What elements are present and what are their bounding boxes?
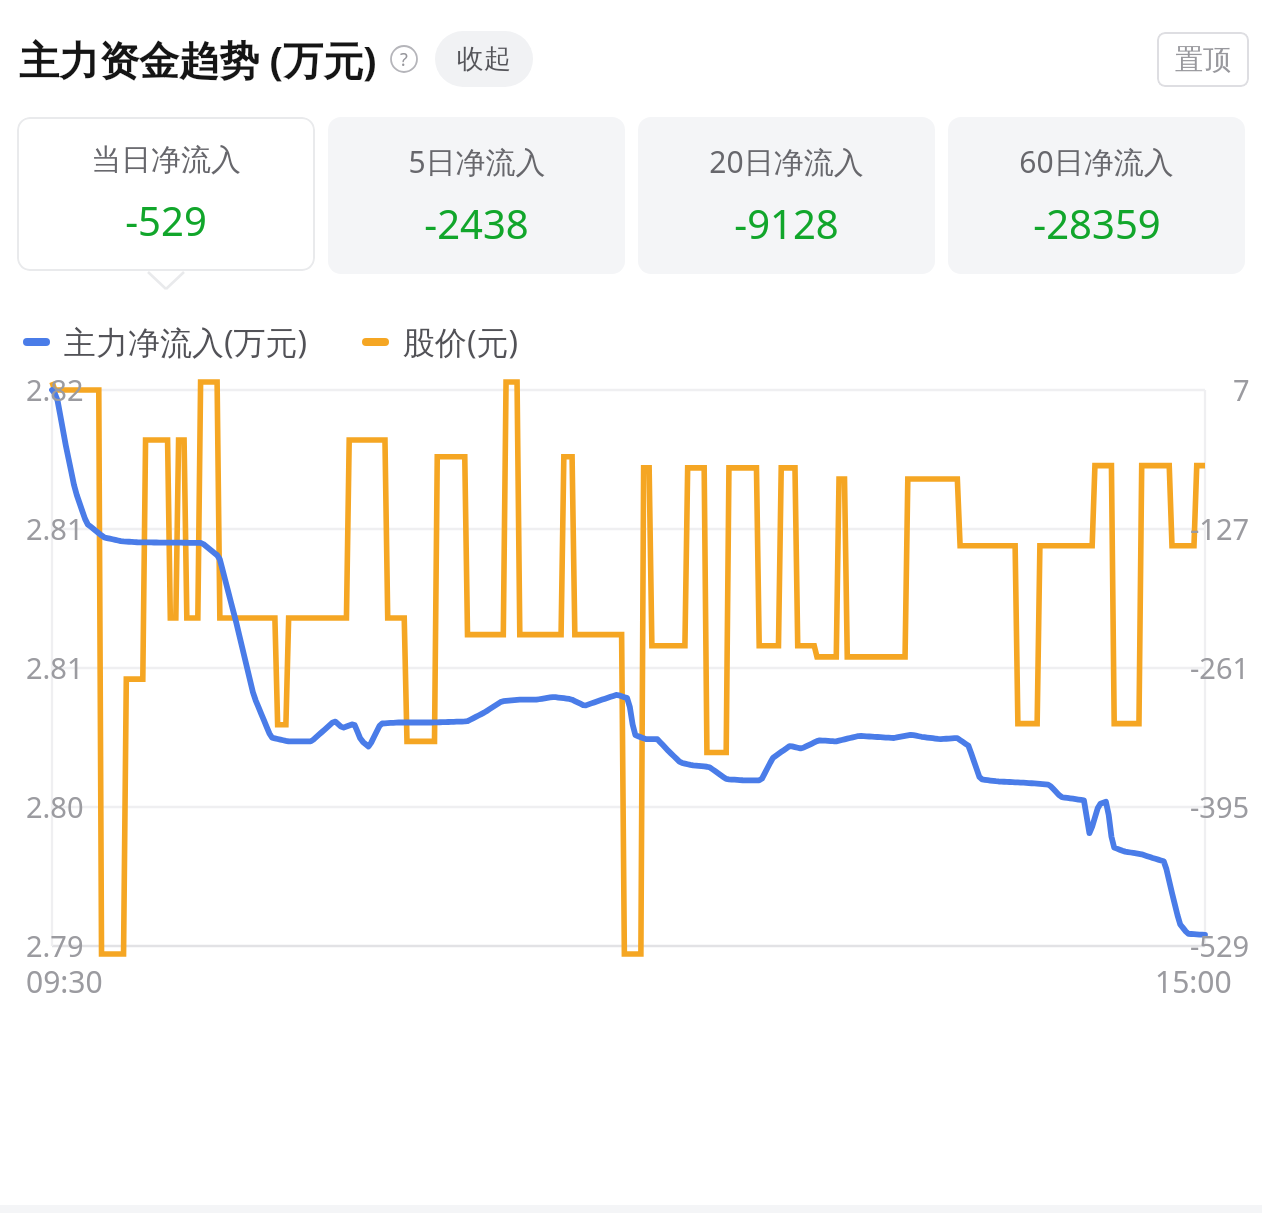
staticText: ? — [400, 47, 408, 72]
button[interactable]: 收起 — [435, 31, 533, 87]
staticText: -9128 — [734, 196, 839, 250]
staticText: -28359 — [1033, 196, 1161, 250]
staticText: -529 — [125, 193, 207, 247]
button[interactable]: Help — [390, 45, 418, 73]
staticText: -261 — [1190, 648, 1250, 687]
staticText: 7 — [1233, 370, 1250, 409]
staticText: 主力资金趋势 (万元) — [19, 32, 377, 87]
staticText: 2.81 — [26, 648, 84, 687]
staticText: 收起 — [457, 42, 511, 76]
button[interactable]: 20日净流入 — [638, 117, 935, 274]
staticText: -127 — [1190, 509, 1250, 548]
staticText: 20日净流入 — [709, 141, 864, 182]
staticText: 5日净流入 — [408, 141, 546, 182]
staticText: 主力净流入(万元) — [64, 320, 308, 364]
staticText: 2.80 — [26, 787, 84, 826]
button[interactable]: 5日净流入 — [328, 117, 625, 274]
staticText: 股价(元) — [403, 320, 519, 364]
button[interactable]: 当日净流入 — [17, 117, 315, 271]
staticText: 2.79 — [26, 926, 84, 965]
staticText: 15:00 — [1155, 961, 1232, 1002]
button[interactable]: 60日净流入 — [948, 117, 1245, 274]
button[interactable]: 置顶 — [1157, 32, 1249, 87]
staticText: -395 — [1190, 787, 1250, 826]
staticText: 2.82 — [26, 370, 84, 409]
staticText: -2438 — [424, 196, 529, 250]
staticText: 60日净流入 — [1019, 141, 1174, 182]
staticText: 当日净流入 — [91, 141, 241, 179]
staticText: 09:30 — [26, 961, 103, 1002]
staticText: 2.81 — [26, 509, 84, 548]
staticText: -529 — [1190, 926, 1250, 965]
staticText: 置顶 — [1175, 42, 1231, 77]
